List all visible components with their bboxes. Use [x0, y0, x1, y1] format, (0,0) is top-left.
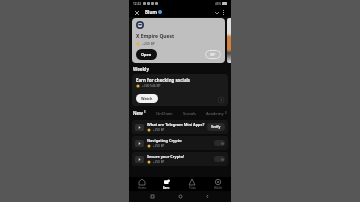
button[interactable]: Open: [136, 49, 157, 60]
button[interactable]: Earn: [154, 177, 179, 191]
button[interactable]: Blum: [145, 9, 162, 15]
staticText: Open: [141, 52, 152, 57]
staticText: New: [133, 110, 143, 116]
button[interactable]: Socials: [183, 110, 196, 117]
button[interactable]: Open weekly quest: [217, 96, 224, 103]
button[interactable]: Watch: [136, 94, 158, 103]
staticText: 3: [225, 111, 227, 115]
staticText: Verify: [211, 125, 221, 129]
staticText: Weekly: [133, 66, 149, 72]
button[interactable]: Earn for checking socials: [132, 74, 228, 106]
staticText: 12:23: [133, 2, 142, 6]
staticText: Home: [138, 186, 146, 190]
staticText: +340 546 BP: [142, 84, 161, 88]
button[interactable]: Verify: [207, 123, 225, 131]
staticText: Earn for checking socials: [136, 77, 191, 83]
button[interactable]: Recents: [148, 192, 157, 201]
button[interactable]: Navigating Crypto: [132, 136, 228, 150]
button[interactable]: Secure your Crypto!: [132, 152, 228, 166]
button[interactable]: Home: [176, 192, 185, 201]
button[interactable]: Pizza: [179, 177, 205, 191]
staticText: Pizza: [189, 186, 196, 190]
staticText: +250 BP: [153, 144, 165, 148]
staticText: X Empire Quest: [136, 33, 175, 40]
staticText: Academy: [206, 111, 224, 116]
staticText: +250 BP: [153, 160, 165, 164]
button[interactable]: OnChain: [156, 110, 173, 117]
staticText: VIP: [210, 52, 216, 57]
button[interactable]: Start quest: [214, 140, 225, 146]
staticText: Secure your Crypto!: [147, 154, 185, 159]
button[interactable]: Home: [129, 177, 154, 191]
button[interactable]: More options: [220, 9, 227, 16]
button[interactable]: Close: [133, 9, 140, 16]
staticText: Wallet: [214, 186, 223, 190]
staticText: Socials: [183, 111, 196, 116]
button[interactable]: Academy: [206, 110, 227, 117]
staticText: +250 BP: [153, 128, 165, 132]
staticText: Earn: [163, 186, 170, 190]
button[interactable]: X Empire Quest: [132, 18, 225, 63]
staticText: OnChain: [156, 111, 173, 116]
staticText: Navigating Crypto: [147, 138, 182, 143]
button[interactable]: VIP: [205, 50, 221, 59]
staticText: Blum: [145, 9, 157, 15]
staticText: Watch: [141, 96, 153, 101]
staticText: What are Telegram Mini Apps?: [147, 122, 205, 127]
button[interactable]: Back: [203, 192, 212, 201]
button[interactable]: Wallet: [205, 177, 231, 191]
button[interactable]: What are Telegram Mini Apps?: [132, 120, 228, 134]
button[interactable]: Expand: [213, 9, 220, 16]
staticText: +200 BP: [142, 41, 155, 46]
button[interactable]: Start quest: [214, 156, 225, 162]
staticText: 8: [144, 110, 146, 114]
button[interactable]: New: [133, 109, 146, 117]
staticText: 46%: [215, 2, 221, 6]
button[interactable]: [227, 18, 231, 63]
